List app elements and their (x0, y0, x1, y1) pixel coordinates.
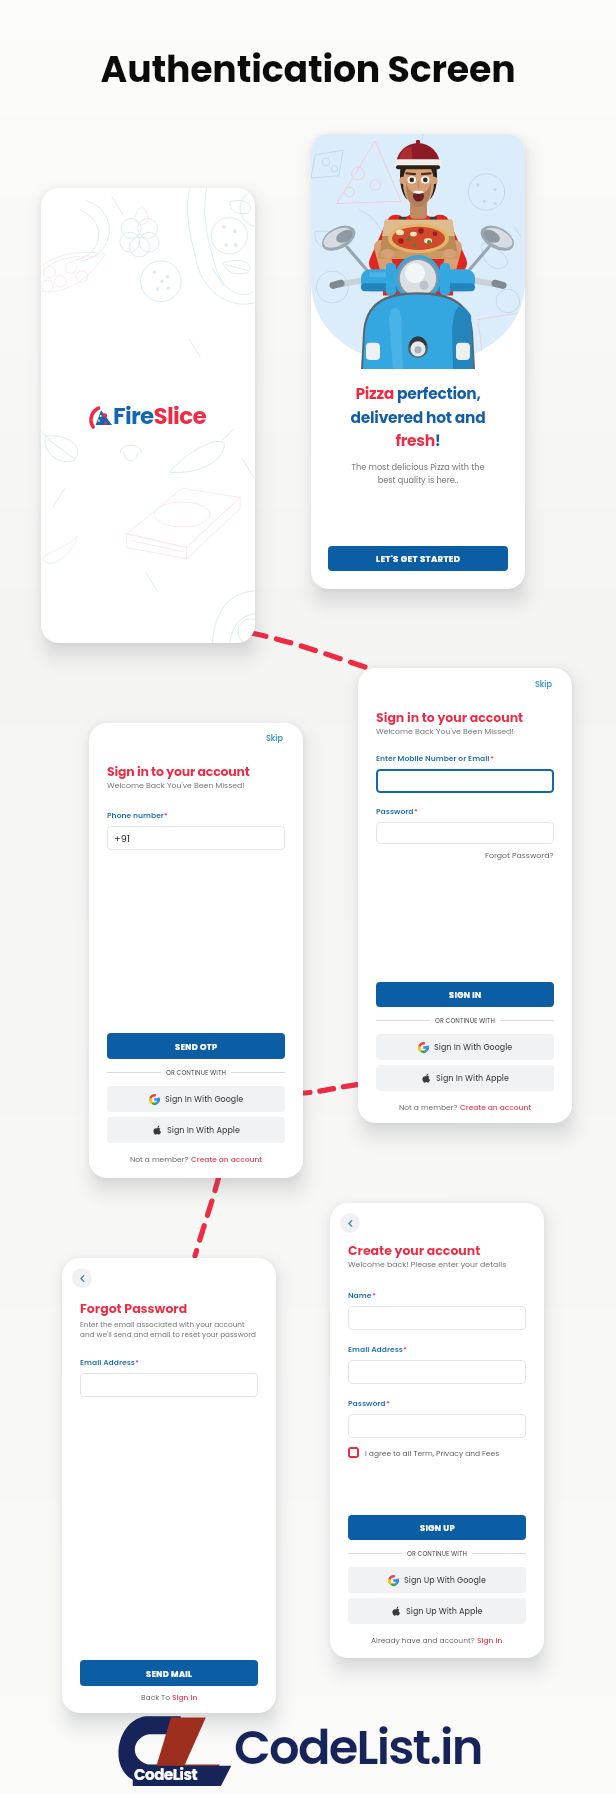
staticText: Password (376, 806, 414, 817)
button[interactable]: Back (72, 1268, 92, 1288)
button[interactable]: Create an account (460, 1102, 532, 1112)
staticText: The most delicious Pizza with the best q… (337, 461, 499, 486)
staticText: Phone number (107, 810, 164, 821)
staticText: FireSlice (113, 400, 206, 432)
staticText: Forgot Password? (485, 850, 554, 861)
staticText: Create an account (460, 1102, 532, 1112)
button[interactable]: Sign In With Google (107, 1086, 285, 1112)
staticText: Not a member? (399, 1102, 460, 1112)
staticText: * (386, 1398, 390, 1409)
staticText: * (403, 1344, 407, 1355)
staticText: Back To (141, 1692, 172, 1702)
button[interactable]: Sign Up With Apple (348, 1598, 526, 1624)
staticText: Pizza perfection, delivered hot and fres… (325, 383, 511, 452)
staticText: Create your account (348, 1242, 481, 1259)
button[interactable]: Skip (533, 677, 554, 692)
staticText: CodeList.in (234, 1714, 482, 1781)
staticText: Sign In With Google (434, 1042, 513, 1053)
staticText: Sign Up With Google (404, 1575, 486, 1586)
button[interactable]: Skip (264, 731, 285, 746)
staticText: Email Address (348, 1344, 403, 1355)
button[interactable]: Sign In With Apple (376, 1065, 554, 1091)
staticText: Sign In With Google (165, 1094, 244, 1105)
button[interactable]: SEND MAIL (80, 1660, 258, 1686)
staticText: SIGN UP (420, 1522, 455, 1533)
button[interactable]: Forgot Password? (485, 850, 554, 861)
button[interactable] (348, 1414, 526, 1438)
staticText: * (164, 810, 168, 821)
staticText: Sign In With Apple (167, 1125, 240, 1136)
staticText: SEND OTP (175, 1041, 218, 1052)
button[interactable]: Sign In (477, 1635, 503, 1645)
button[interactable] (348, 1306, 526, 1330)
button[interactable]: +91 (107, 826, 285, 850)
staticText: Authentication Screen (0, 44, 616, 95)
button[interactable]: SEND OTP (107, 1033, 285, 1059)
staticText: +91 (114, 832, 131, 845)
button[interactable] (80, 1373, 258, 1397)
button[interactable]: Sign In (172, 1692, 198, 1702)
staticText: Welcome Back You've Been Missed! (376, 726, 514, 737)
button[interactable]: Back (340, 1213, 360, 1233)
button[interactable] (376, 822, 554, 844)
staticText: Sign Up With Apple (406, 1606, 483, 1617)
staticText: Sign In (172, 1692, 198, 1702)
button[interactable]: Create an account (191, 1154, 263, 1164)
staticText: OR CONTINUE WITH (407, 1549, 467, 1558)
staticText: SEND MAIL (146, 1668, 193, 1679)
staticText: Skip (535, 679, 552, 690)
button[interactable]: Sign In With Apple (107, 1117, 285, 1143)
staticText: Skip (266, 733, 283, 744)
staticText: Welcome Back You've Been Missed! (107, 780, 245, 791)
staticText: CodeList (134, 1764, 198, 1785)
staticText: * (372, 1290, 376, 1301)
button[interactable]: SIGN UP (348, 1515, 526, 1540)
button[interactable] (376, 769, 554, 793)
staticText: Enter the email associated with your acc… (80, 1319, 256, 1339)
staticText: Welcome back! Please enter your details (348, 1259, 507, 1270)
button[interactable]: I agree to all Term, Privacy and Fees (348, 1447, 500, 1458)
staticText: Enter Mobile Number or Email (376, 753, 490, 764)
staticText: Sign In (477, 1635, 503, 1645)
staticText: Forgot Password (80, 1300, 188, 1317)
staticText: SIGN IN (449, 989, 482, 1000)
staticText: LET'S GET STARTED (376, 553, 461, 565)
button[interactable] (348, 1360, 526, 1384)
staticText: Sign In With Apple (436, 1073, 509, 1084)
staticText: Already have and account? (371, 1635, 477, 1645)
staticText: Sign in to your account (107, 763, 250, 780)
staticText: OR CONTINUE WITH (435, 1016, 495, 1025)
staticText: Password (348, 1398, 386, 1409)
button[interactable]: Sign Up With Google (348, 1567, 526, 1593)
staticText: * (135, 1357, 139, 1368)
staticText: * (490, 753, 494, 764)
button[interactable]: LET'S GET STARTED (328, 546, 508, 571)
staticText: * (414, 806, 418, 817)
staticText: Not a member? (130, 1154, 191, 1164)
staticText: Sign in to your account (376, 709, 524, 726)
staticText: I agree to all Term, Privacy and Fees (365, 1448, 500, 1458)
staticText: Create an account (191, 1154, 263, 1164)
staticText: Name (348, 1290, 372, 1301)
staticText: OR CONTINUE WITH (166, 1068, 226, 1077)
button[interactable]: SIGN IN (376, 982, 554, 1007)
button[interactable]: Sign In With Google (376, 1034, 554, 1060)
staticText: Email Address (80, 1357, 135, 1368)
